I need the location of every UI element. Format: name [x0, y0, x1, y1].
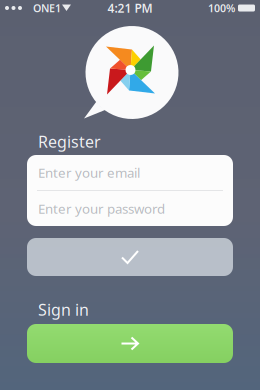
staticText: 100% — [208, 1, 235, 15]
staticText: Register — [38, 131, 101, 152]
staticText: Enter your password — [38, 200, 165, 217]
staticText: Sign in — [38, 299, 89, 320]
button[interactable]: Confirm registration — [27, 238, 233, 276]
staticText: Enter your email — [38, 164, 140, 181]
staticText: ONE1 — [33, 1, 61, 15]
button[interactable]: Sign in — [27, 324, 233, 363]
staticText: 4:21 PM — [107, 0, 152, 16]
